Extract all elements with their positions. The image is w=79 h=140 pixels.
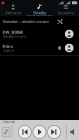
staticText: Ulrychovi: [2, 49, 14, 52]
staticText: Ukrajinská: [2, 120, 14, 124]
staticText: Nahodné – aktuální seznam: [2, 19, 49, 24]
staticText: Skladby: [33, 10, 46, 15]
button[interactable]: Songs: [26, 6, 53, 16]
button[interactable]: DW_B0068: [0, 27, 79, 41]
staticText: Interpreti: [5, 10, 21, 15]
button[interactable]: Nahodné – aktuální seznam: [0, 16, 79, 27]
button[interactable]: Volume: [67, 124, 79, 139]
button[interactable]: Artists: [0, 6, 26, 16]
staticText: Neznámý interpret: [2, 35, 26, 38]
button[interactable]: Klára: [0, 41, 79, 55]
staticText: Klára: [2, 44, 12, 49]
staticText: DW_B0068: [2, 30, 22, 35]
button[interactable]: Play: [33, 125, 46, 138]
button[interactable]: Previous: [18, 125, 31, 138]
button[interactable]: Playlists: [53, 6, 79, 16]
staticText: Seznamy: [58, 10, 74, 15]
button[interactable]: Next: [47, 125, 60, 138]
